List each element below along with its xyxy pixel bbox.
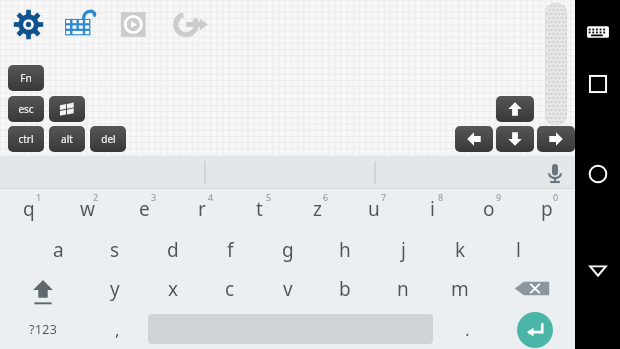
- staticText: 2: [93, 191, 99, 203]
- staticText: l: [516, 237, 521, 263]
- button[interactable]: .: [440, 309, 495, 349]
- staticText: ?123: [29, 320, 57, 338]
- button[interactable]: f: [201, 230, 259, 269]
- staticText: Fn: [20, 71, 32, 85]
- button[interactable]: d: [144, 230, 202, 269]
- staticText: c: [225, 276, 235, 302]
- button[interactable]: w: [58, 189, 116, 228]
- button[interactable]: n: [374, 269, 432, 308]
- button[interactable]: i: [403, 189, 461, 228]
- button[interactable]: r: [173, 189, 231, 228]
- button[interactable]: h: [316, 230, 374, 269]
- button[interactable]: e: [115, 189, 173, 228]
- staticText: 0: [553, 191, 559, 203]
- button[interactable]: c: [201, 269, 259, 308]
- button[interactable]: a: [29, 230, 87, 269]
- button[interactable]: u: [345, 189, 403, 228]
- button[interactable]: [49, 96, 85, 122]
- staticText: i: [430, 196, 435, 222]
- staticText: 8: [438, 191, 444, 203]
- staticText: r: [198, 196, 206, 222]
- staticText: p: [541, 196, 553, 222]
- staticText: j: [401, 237, 406, 263]
- staticText: k: [455, 237, 466, 263]
- staticText: y: [110, 276, 120, 302]
- staticText: s: [110, 237, 120, 263]
- staticText: del: [101, 132, 116, 146]
- button[interactable]: Play: [114, 4, 154, 44]
- button[interactable]: v: [259, 269, 317, 308]
- button[interactable]: Fn: [8, 65, 44, 91]
- button[interactable]: x: [144, 269, 202, 308]
- staticText: g: [282, 237, 294, 263]
- staticText: 4: [208, 191, 214, 203]
- button[interactable]: y: [86, 269, 144, 308]
- staticText: m: [451, 276, 469, 302]
- button[interactable]: Exit: [168, 4, 208, 44]
- button[interactable]: q: [0, 189, 58, 228]
- staticText: w: [80, 196, 95, 222]
- button[interactable]: Arrow down: [496, 126, 534, 152]
- button[interactable]: t: [230, 189, 288, 228]
- button[interactable]: p: [518, 189, 576, 228]
- button[interactable]: del: [90, 126, 126, 152]
- button[interactable]: z: [288, 189, 346, 228]
- button[interactable]: k: [431, 230, 489, 269]
- button[interactable]: g: [259, 230, 317, 269]
- button[interactable]: Voice input: [540, 158, 570, 188]
- button[interactable]: Enter: [517, 312, 553, 348]
- staticText: 5: [266, 191, 272, 203]
- staticText: 7: [381, 191, 387, 203]
- staticText: o: [483, 196, 495, 222]
- button[interactable]: Recents: [575, 62, 620, 106]
- button[interactable]: Arrow up: [496, 96, 534, 122]
- staticText: e: [139, 196, 150, 222]
- button[interactable]: o: [460, 189, 518, 228]
- button[interactable]: Home: [575, 152, 620, 196]
- button[interactable]: s: [86, 230, 144, 269]
- staticText: h: [339, 237, 351, 263]
- button[interactable]: Keyboard settings: [60, 4, 100, 44]
- button[interactable]: l: [489, 230, 547, 269]
- button[interactable]: [545, 3, 567, 125]
- button[interactable]: Back: [575, 248, 620, 292]
- button[interactable]: Arrow left: [455, 126, 493, 152]
- button[interactable]: alt: [49, 126, 85, 152]
- button[interactable]: ctrl: [8, 126, 44, 152]
- staticText: n: [397, 276, 409, 302]
- staticText: 6: [323, 191, 329, 203]
- staticText: d: [167, 237, 179, 263]
- button[interactable]: m: [431, 269, 489, 308]
- staticText: u: [368, 196, 380, 222]
- button[interactable]: Hide keyboard: [575, 10, 620, 54]
- button[interactable]: Settings: [8, 4, 48, 44]
- button[interactable]: Arrow right: [537, 126, 575, 152]
- staticText: .: [465, 318, 470, 341]
- staticText: 1: [36, 191, 42, 203]
- staticText: f: [227, 237, 234, 263]
- button[interactable]: Shift: [0, 269, 86, 308]
- staticText: 9: [496, 191, 502, 203]
- staticText: q: [23, 196, 35, 222]
- button[interactable]: b: [316, 269, 374, 308]
- staticText: a: [53, 237, 64, 263]
- staticText: x: [168, 276, 179, 302]
- button[interactable]: ?123: [0, 309, 85, 349]
- button[interactable]: ,: [90, 309, 145, 349]
- staticText: 3: [151, 191, 157, 203]
- button[interactable]: esc: [8, 96, 44, 122]
- staticText: z: [313, 196, 322, 222]
- staticText: v: [283, 276, 293, 302]
- button[interactable]: [0, 156, 575, 189]
- button[interactable]: Backspace: [489, 269, 575, 308]
- staticText: ,: [115, 318, 120, 341]
- staticText: ctrl: [18, 132, 34, 146]
- staticText: b: [339, 276, 351, 302]
- staticText: alt: [61, 132, 73, 146]
- button[interactable]: j: [374, 230, 432, 269]
- staticText: t: [256, 196, 263, 222]
- staticText: esc: [18, 102, 34, 116]
